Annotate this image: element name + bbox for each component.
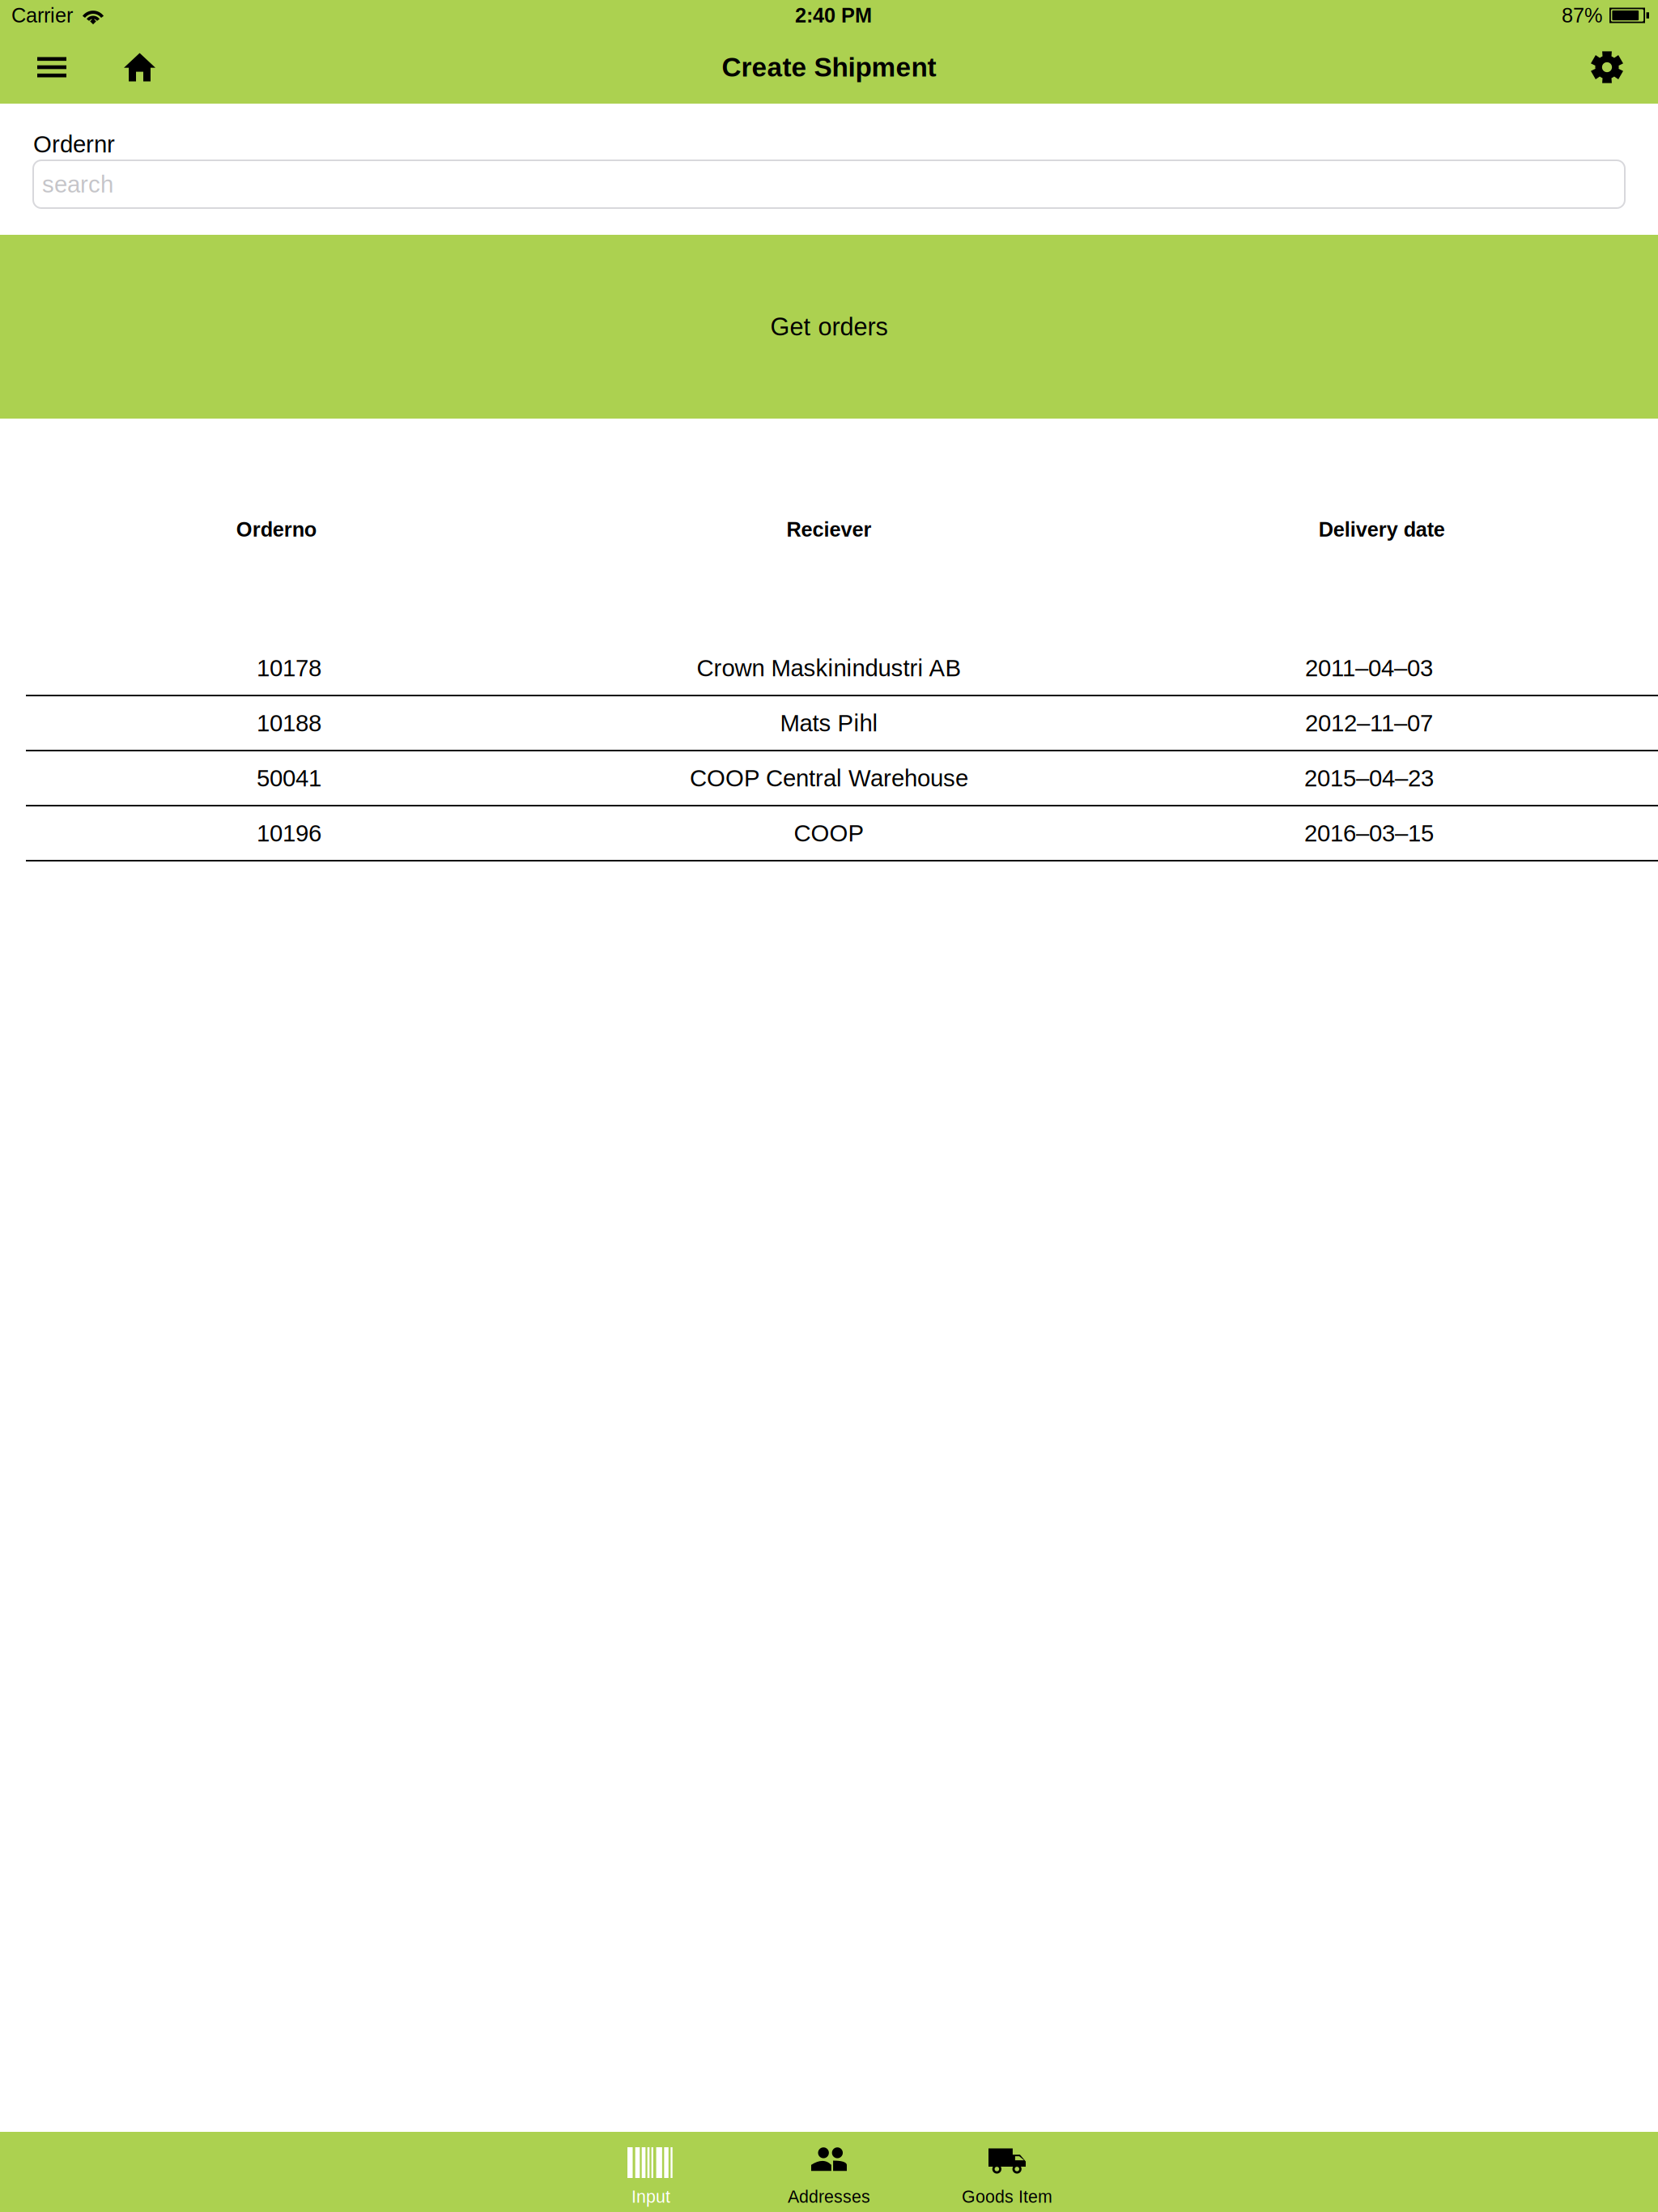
staticText: COOP <box>794 820 864 846</box>
button[interactable]: 10188 <box>0 696 1658 751</box>
staticText: Ordernr <box>33 131 115 157</box>
staticText: Crown Maskinindustri AB <box>697 655 961 681</box>
staticText: Addresses <box>788 2187 870 2206</box>
staticText: 2015‒04‒23 <box>1304 765 1434 791</box>
staticText: 2012‒11‒07 <box>1305 710 1433 736</box>
button[interactable]: Home <box>89 31 190 104</box>
button[interactable]: 50041 <box>0 751 1658 806</box>
button[interactable]: Get orders <box>0 235 1658 419</box>
staticText: Input <box>631 2187 670 2206</box>
button[interactable]: 10178 <box>0 641 1658 696</box>
staticText: Goods Item <box>962 2187 1052 2206</box>
staticText: Reciever <box>786 518 872 541</box>
staticText: Orderno <box>236 518 316 541</box>
staticText: COOP Central Warehouse <box>690 765 968 791</box>
button[interactable]: search <box>33 160 1625 208</box>
button[interactable]: Goods Item <box>918 2132 1096 2212</box>
staticText: Carrier <box>11 4 73 27</box>
staticText: Get orders <box>770 313 888 341</box>
button[interactable]: Menu <box>15 31 89 104</box>
staticText: 2011‒04‒03 <box>1305 655 1433 681</box>
staticText: 10188 <box>257 710 321 736</box>
staticText: 2016‒03‒15 <box>1304 820 1434 846</box>
staticText: 2:40 PM <box>795 4 872 27</box>
button[interactable]: 10196 <box>0 806 1658 861</box>
button[interactable]: Settings <box>1571 31 1643 104</box>
staticText: 50041 <box>257 765 321 791</box>
staticText: 10196 <box>257 820 321 846</box>
staticText: search <box>42 171 113 197</box>
staticText: Delivery date <box>1319 518 1445 541</box>
staticText: 10178 <box>257 655 321 681</box>
staticText: Mats Pihl <box>780 710 878 736</box>
staticText: Create Shipment <box>722 52 936 82</box>
button[interactable]: Input <box>562 2132 740 2212</box>
button[interactable]: Addresses <box>740 2132 918 2212</box>
staticText: 87% <box>1562 4 1603 27</box>
